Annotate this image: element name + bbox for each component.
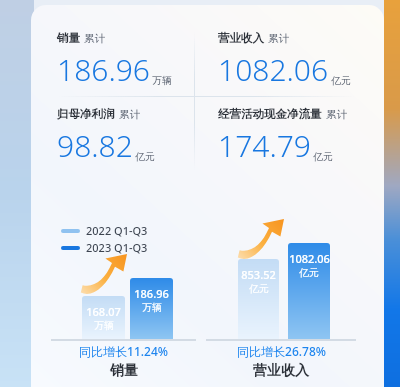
staticText: 累计 (326, 108, 347, 121)
staticText: 186.96 (134, 286, 169, 301)
staticText: 万辆 (94, 319, 114, 332)
other: Growth arrow (236, 218, 296, 264)
staticText: 98.82 (57, 125, 133, 166)
staticText: 同比增长26.78% (237, 343, 326, 359)
staticText: 累计 (84, 32, 105, 45)
staticText: 2022 Q1-Q3 (86, 223, 148, 238)
staticText: 174.79 (218, 125, 311, 166)
staticText: 销量 (57, 31, 80, 45)
staticText: 186.96 (57, 49, 150, 90)
staticText: 168.07 (86, 304, 121, 319)
button[interactable]: 营业收入 (218, 31, 351, 90)
staticText: 归母净利润 (57, 107, 115, 121)
staticText: 亿元 (313, 150, 333, 163)
staticText: 1082.06 (289, 251, 330, 266)
button[interactable]: 经营活动现金净流量 (218, 107, 347, 166)
other: Growth arrow (79, 253, 139, 299)
staticText: 亿元 (249, 282, 269, 295)
staticText: 亿元 (331, 74, 351, 87)
button[interactable]: 销量 (57, 31, 172, 90)
staticText: 亿元 (135, 150, 155, 163)
staticText: 营业收入 (218, 31, 264, 45)
staticText: 销量 (110, 362, 138, 380)
staticText: 2023 Q1-Q3 (86, 240, 148, 255)
button[interactable]: 归母净利润 (57, 107, 155, 166)
button[interactable] (130, 278, 173, 339)
button[interactable] (82, 296, 125, 339)
staticText: 累计 (268, 32, 289, 45)
staticText: 累计 (119, 108, 140, 121)
staticText: 万辆 (152, 74, 172, 87)
staticText: 营业收入 (253, 362, 309, 380)
button[interactable] (238, 259, 279, 339)
staticText: 亿元 (299, 266, 319, 279)
staticText: 853.52 (241, 267, 276, 282)
staticText: 经营活动现金净流量 (218, 107, 322, 121)
button[interactable] (288, 243, 330, 339)
staticText: 万辆 (142, 301, 162, 314)
staticText: 1082.06 (218, 49, 329, 90)
staticText: 同比增长11.24% (79, 343, 168, 359)
